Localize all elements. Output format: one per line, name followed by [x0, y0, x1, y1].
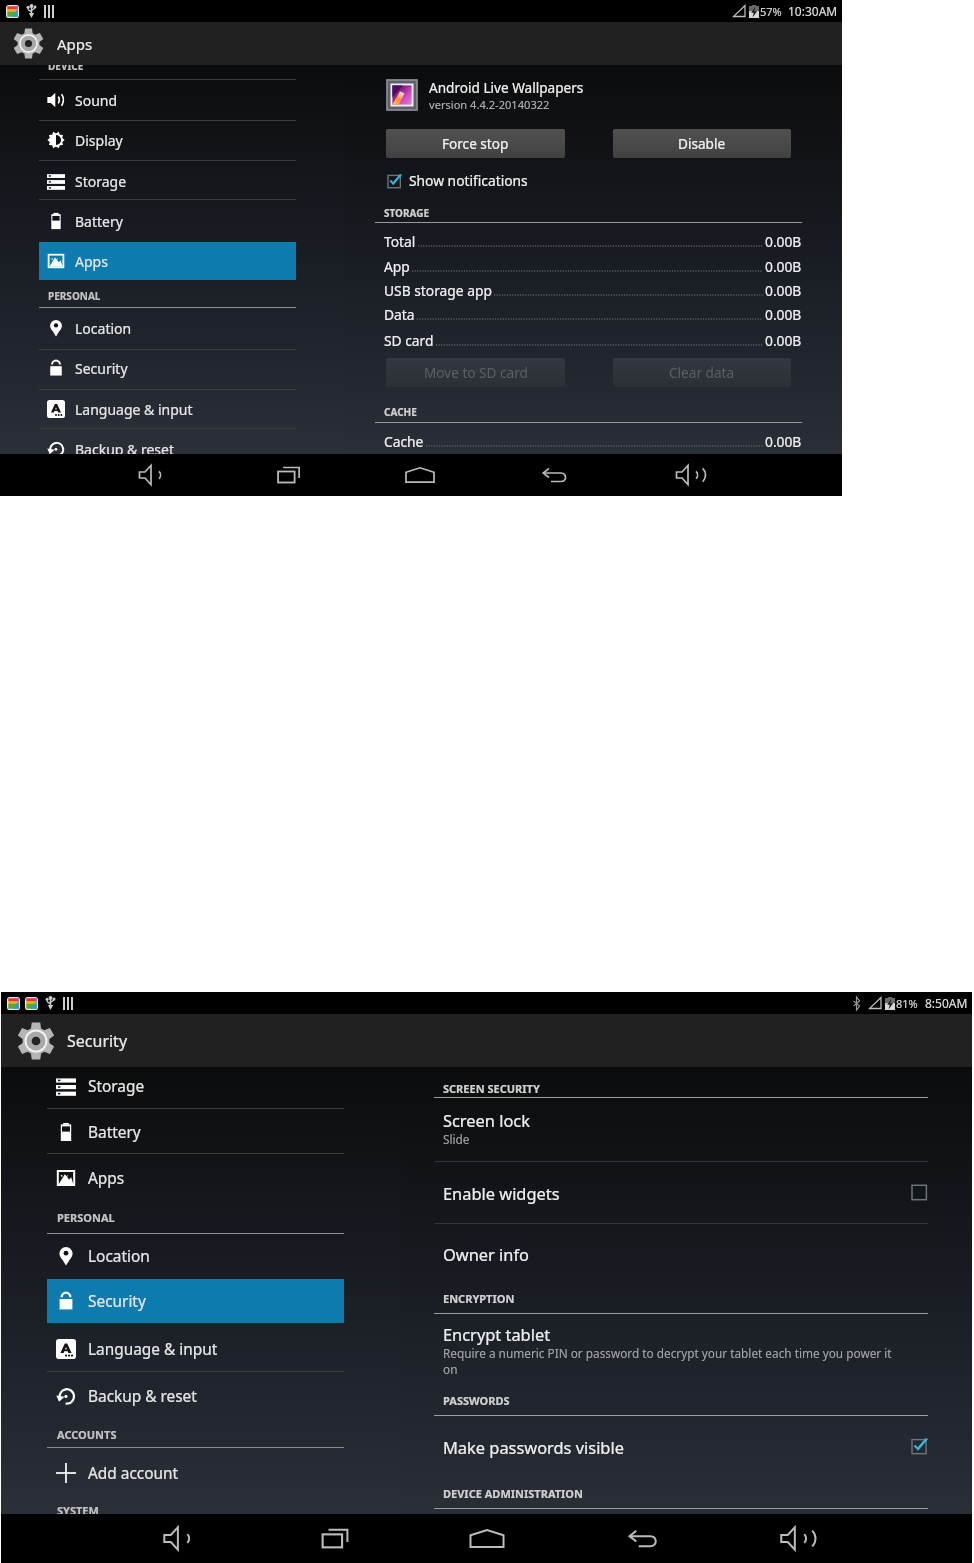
staticText: 0.00B — [765, 331, 802, 350]
button[interactable]: Total — [384, 230, 802, 252]
button[interactable]: Apps — [47, 1156, 344, 1200]
staticText: Add account — [88, 1463, 179, 1484]
other: Settings — [17, 1022, 55, 1060]
button[interactable]: App — [384, 255, 802, 277]
button[interactable]: Move to SD card — [386, 358, 565, 387]
staticText: Slide — [443, 1131, 470, 1147]
staticText: ENCRYPTION — [443, 1291, 515, 1306]
button[interactable]: Battery — [47, 1110, 344, 1154]
staticText: Disable — [678, 134, 726, 153]
staticText: 81% — [896, 996, 918, 1011]
button[interactable]: Cache — [384, 430, 802, 452]
staticText: Force stop — [442, 134, 509, 153]
staticText: version 4.4.2-20140322 — [429, 97, 550, 112]
button[interactable]: Battery — [39, 202, 296, 240]
staticText: Language & input — [88, 1339, 218, 1360]
staticText: 8:50AM — [925, 995, 968, 1011]
staticText: Total — [384, 232, 416, 251]
button[interactable]: Storage — [39, 162, 296, 200]
button[interactable]: Screen lock — [443, 1109, 928, 1147]
staticText: CACHE — [384, 405, 417, 419]
staticText: STORAGE — [384, 206, 430, 220]
button[interactable]: Volume up — [663, 454, 715, 496]
staticText: Security — [67, 1030, 128, 1052]
button[interactable]: Settings — [1, 1014, 972, 1067]
button[interactable]: Security — [47, 1279, 344, 1323]
staticText: Owner info — [443, 1243, 530, 1265]
staticText: SCREEN SECURITY — [443, 1081, 540, 1096]
staticText: App — [384, 257, 410, 276]
staticText: SD card — [384, 331, 434, 350]
staticText: Apps — [88, 1168, 125, 1189]
button[interactable]: Security — [39, 349, 296, 387]
button[interactable]: Storage — [47, 1067, 344, 1108]
button[interactable]: Add account — [47, 1451, 344, 1495]
button[interactable]: Data — [384, 303, 802, 325]
button[interactable]: Clear data — [613, 358, 791, 387]
staticText: Android Live Wallpapers — [429, 78, 584, 97]
button[interactable]: Show notifications — [388, 171, 528, 190]
staticText: Storage — [75, 172, 127, 191]
staticText: Data — [384, 305, 415, 324]
button[interactable]: Back — [527, 454, 579, 496]
staticText: Cache — [384, 432, 424, 451]
staticText: Backup & reset — [75, 440, 174, 454]
staticText: Require a numeric PIN or password to dec… — [443, 1345, 892, 1377]
staticText: Display — [75, 131, 123, 150]
button[interactable]: Sound — [39, 81, 296, 119]
staticText: DEVICE ADMINISTRATION — [443, 1486, 583, 1501]
staticText: DEVICE — [48, 65, 84, 73]
button[interactable]: Recent apps — [304, 1514, 365, 1563]
staticText: PASSWORDS — [443, 1393, 510, 1408]
button[interactable]: USB storage app — [384, 279, 802, 301]
staticText: Make passwords visible — [443, 1436, 624, 1458]
staticText: SYSTEM — [57, 1503, 99, 1514]
staticText: Location — [88, 1246, 150, 1267]
button[interactable]: Enable widgets — [443, 1182, 928, 1204]
staticText: Language & input — [75, 400, 193, 419]
button[interactable]: Backup & reset — [47, 1374, 344, 1418]
button[interactable]: Apps — [39, 242, 296, 280]
staticText: Apps — [57, 34, 93, 54]
button[interactable]: Home — [394, 454, 446, 496]
button[interactable]: Settings — [0, 22, 842, 65]
staticText: 0.00B — [765, 232, 802, 251]
staticText: 57% — [760, 4, 782, 19]
button[interactable]: Owner info — [443, 1243, 928, 1265]
staticText: ACCOUNTS — [57, 1427, 117, 1442]
button[interactable]: Make passwords visible — [443, 1436, 928, 1458]
other: Settings — [13, 28, 44, 59]
button[interactable]: Force stop — [386, 129, 565, 158]
staticText: Screen lock — [443, 1109, 530, 1131]
button[interactable]: Backup & reset — [39, 430, 296, 454]
button[interactable]: Language & input — [39, 390, 296, 428]
button[interactable]: Disable — [613, 129, 791, 158]
button[interactable]: Language & input — [47, 1327, 344, 1371]
button[interactable]: SD card — [384, 329, 802, 351]
staticText: Enable widgets — [443, 1182, 560, 1204]
button[interactable]: Volume up — [765, 1514, 826, 1563]
button[interactable]: Back — [610, 1514, 671, 1563]
staticText: Battery — [75, 212, 123, 231]
staticText: Apps — [75, 252, 108, 271]
button[interactable]: Location — [39, 309, 296, 347]
staticText: Encrypt tablet — [443, 1323, 551, 1345]
staticText: Clear data — [669, 363, 735, 382]
staticText: Location — [75, 319, 132, 338]
button[interactable]: Volume down — [146, 1514, 207, 1563]
staticText: PERSONAL — [57, 1210, 115, 1225]
staticText: USB storage app — [384, 281, 492, 300]
button[interactable]: Recent apps — [263, 454, 315, 496]
staticText: PERSONAL — [48, 289, 101, 303]
button[interactable]: Location — [47, 1234, 344, 1278]
staticText: Battery — [88, 1122, 141, 1143]
button[interactable]: Volume down — [124, 454, 176, 496]
button[interactable]: Display — [39, 121, 296, 159]
button[interactable]: Encrypt tablet — [443, 1323, 928, 1377]
staticText: Show notifications — [409, 171, 528, 190]
staticText: Backup & reset — [88, 1386, 197, 1407]
staticText: Move to SD card — [424, 363, 528, 382]
button[interactable]: Home — [456, 1514, 517, 1563]
staticText: 0.00B — [765, 305, 802, 324]
staticText: 0.00B — [765, 257, 802, 276]
